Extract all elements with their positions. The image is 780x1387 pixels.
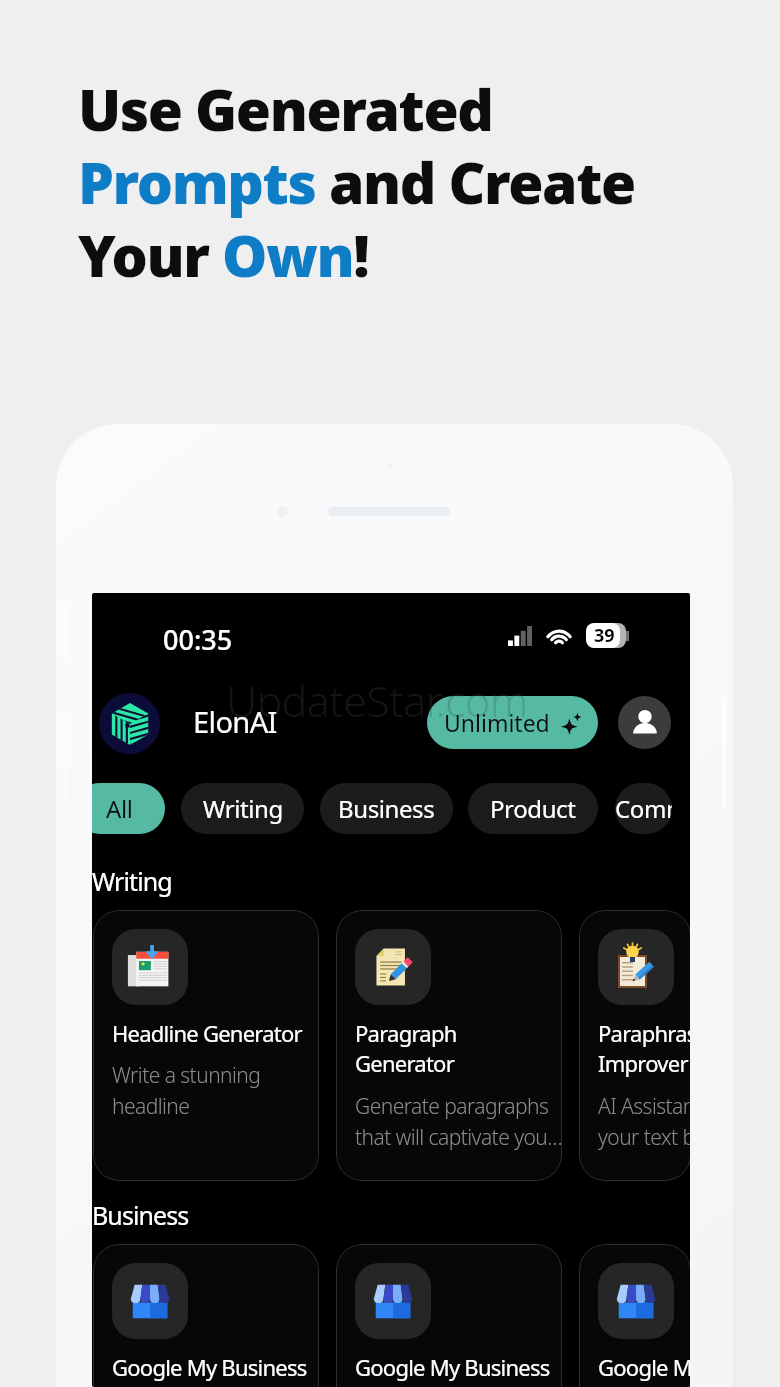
staticText: Unlimited	[444, 707, 550, 738]
button[interactable]: Profile	[618, 696, 671, 749]
staticText: ElonAI	[193, 702, 277, 741]
staticText: Google My Business Product	[598, 1352, 690, 1387]
staticText: Business	[92, 1198, 189, 1232]
button[interactable]: Writing	[181, 783, 304, 834]
button[interactable]: Google My Business Event Post	[336, 1244, 562, 1387]
staticText: Use Generated Prompts and Create Your Ow…	[78, 70, 635, 294]
staticText: UpdateStar.com	[226, 671, 528, 730]
staticText: Product	[490, 792, 576, 825]
staticText: Generate paragraphs that will captivate …	[355, 1092, 562, 1151]
button[interactable]: Business	[320, 783, 453, 834]
staticText: Writing	[92, 864, 172, 898]
button[interactable]: Community	[615, 783, 672, 834]
button[interactable]: Paraphrase Improver	[579, 910, 690, 1181]
button[interactable]: Product	[468, 783, 598, 834]
button[interactable]: Unlimited	[427, 696, 598, 749]
button[interactable]: ElonAI logo	[99, 693, 160, 754]
staticText: Community	[615, 792, 672, 825]
button[interactable]: Headline Generator	[93, 910, 319, 1181]
staticText: AI Assistant for your text based	[598, 1092, 690, 1151]
button[interactable]: Paragraph Generator	[336, 910, 562, 1181]
staticText: Writing	[203, 792, 283, 825]
staticText: Paraphrase Improver	[598, 1018, 690, 1079]
staticText: Headline Generator	[112, 1018, 302, 1048]
staticText: All	[106, 792, 133, 825]
button[interactable]: Google My Business Product	[579, 1244, 690, 1387]
staticText: Business	[338, 792, 435, 825]
staticText: Paragraph Generator	[355, 1018, 457, 1079]
staticText: 39	[594, 623, 615, 648]
staticText: Google My Business What's New Post	[112, 1352, 307, 1387]
staticText: UpdateStar.com	[226, 671, 528, 730]
staticText: 00:35	[163, 621, 233, 658]
staticText: Google My Business Event Post	[355, 1352, 550, 1387]
staticText: Write a stunning headline	[112, 1061, 261, 1120]
button[interactable]: All	[92, 783, 165, 834]
button[interactable]: Google My Business What's New Post	[93, 1244, 319, 1387]
